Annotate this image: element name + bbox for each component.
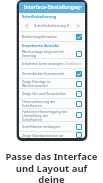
button[interactable]: Vereinfachte Kurzansicht [19,69,85,78]
staticText: Schriftfarbe verlängert [22,124,74,129]
staticText: Interface-Einstellungen [24,4,80,11]
staticText: Passe das Interface und Layout auf deine… [4,150,99,183]
staticText: Zeige Einträge in Wochenansicht [22,79,74,88]
staticText: Farbliche Hinterlegung bei Umstellung de… [22,109,74,121]
button[interactable]: Speichern [75,4,83,12]
staticText: Infoleiste beim anzeigen [22,61,65,66]
button[interactable]: Interface-Einstellungen [19,2,85,13]
staticText: Deaktiviert [65,62,82,66]
button[interactable]: Kleiner [22,21,31,30]
button[interactable]: Schriftfarbe verlängert [19,122,85,131]
staticText: Erweiterte Ansicht [22,43,60,48]
staticText: Zeige Ort und Zusatzinfos [22,91,74,96]
button[interactable]: Wochentage beginnt mit Sonntag [19,49,85,58]
button[interactable]: Zeige Standortsensor an [19,132,85,138]
staticText: Schriftskalierung 0 [34,23,70,28]
button[interactable]: Infoleiste beim anzeigen [19,59,85,68]
staticText: Ortsmarkierung der Schriftarten [22,99,74,108]
staticText: Schriftskalierung [22,14,57,19]
button[interactable]: Zeige Einträge in Wochenansicht [19,79,85,88]
staticText: Bedienungshinweise [22,34,74,39]
staticText: Zeige Standortsensor an [22,133,74,138]
staticText: Vereinfachte Kurzansicht [22,71,74,76]
staticText: Wochentage beginnt mit Sonntag [22,49,74,58]
button[interactable]: Bedienungshinweise [19,32,85,41]
button[interactable]: Farbliche Hinterlegung bei Umstellung de… [19,109,85,121]
button[interactable]: Zeige Ort und Zusatzinfos [19,89,85,98]
button[interactable]: Ortsmarkierung der Schriftarten [19,99,85,108]
button[interactable]: Größer [73,21,82,30]
